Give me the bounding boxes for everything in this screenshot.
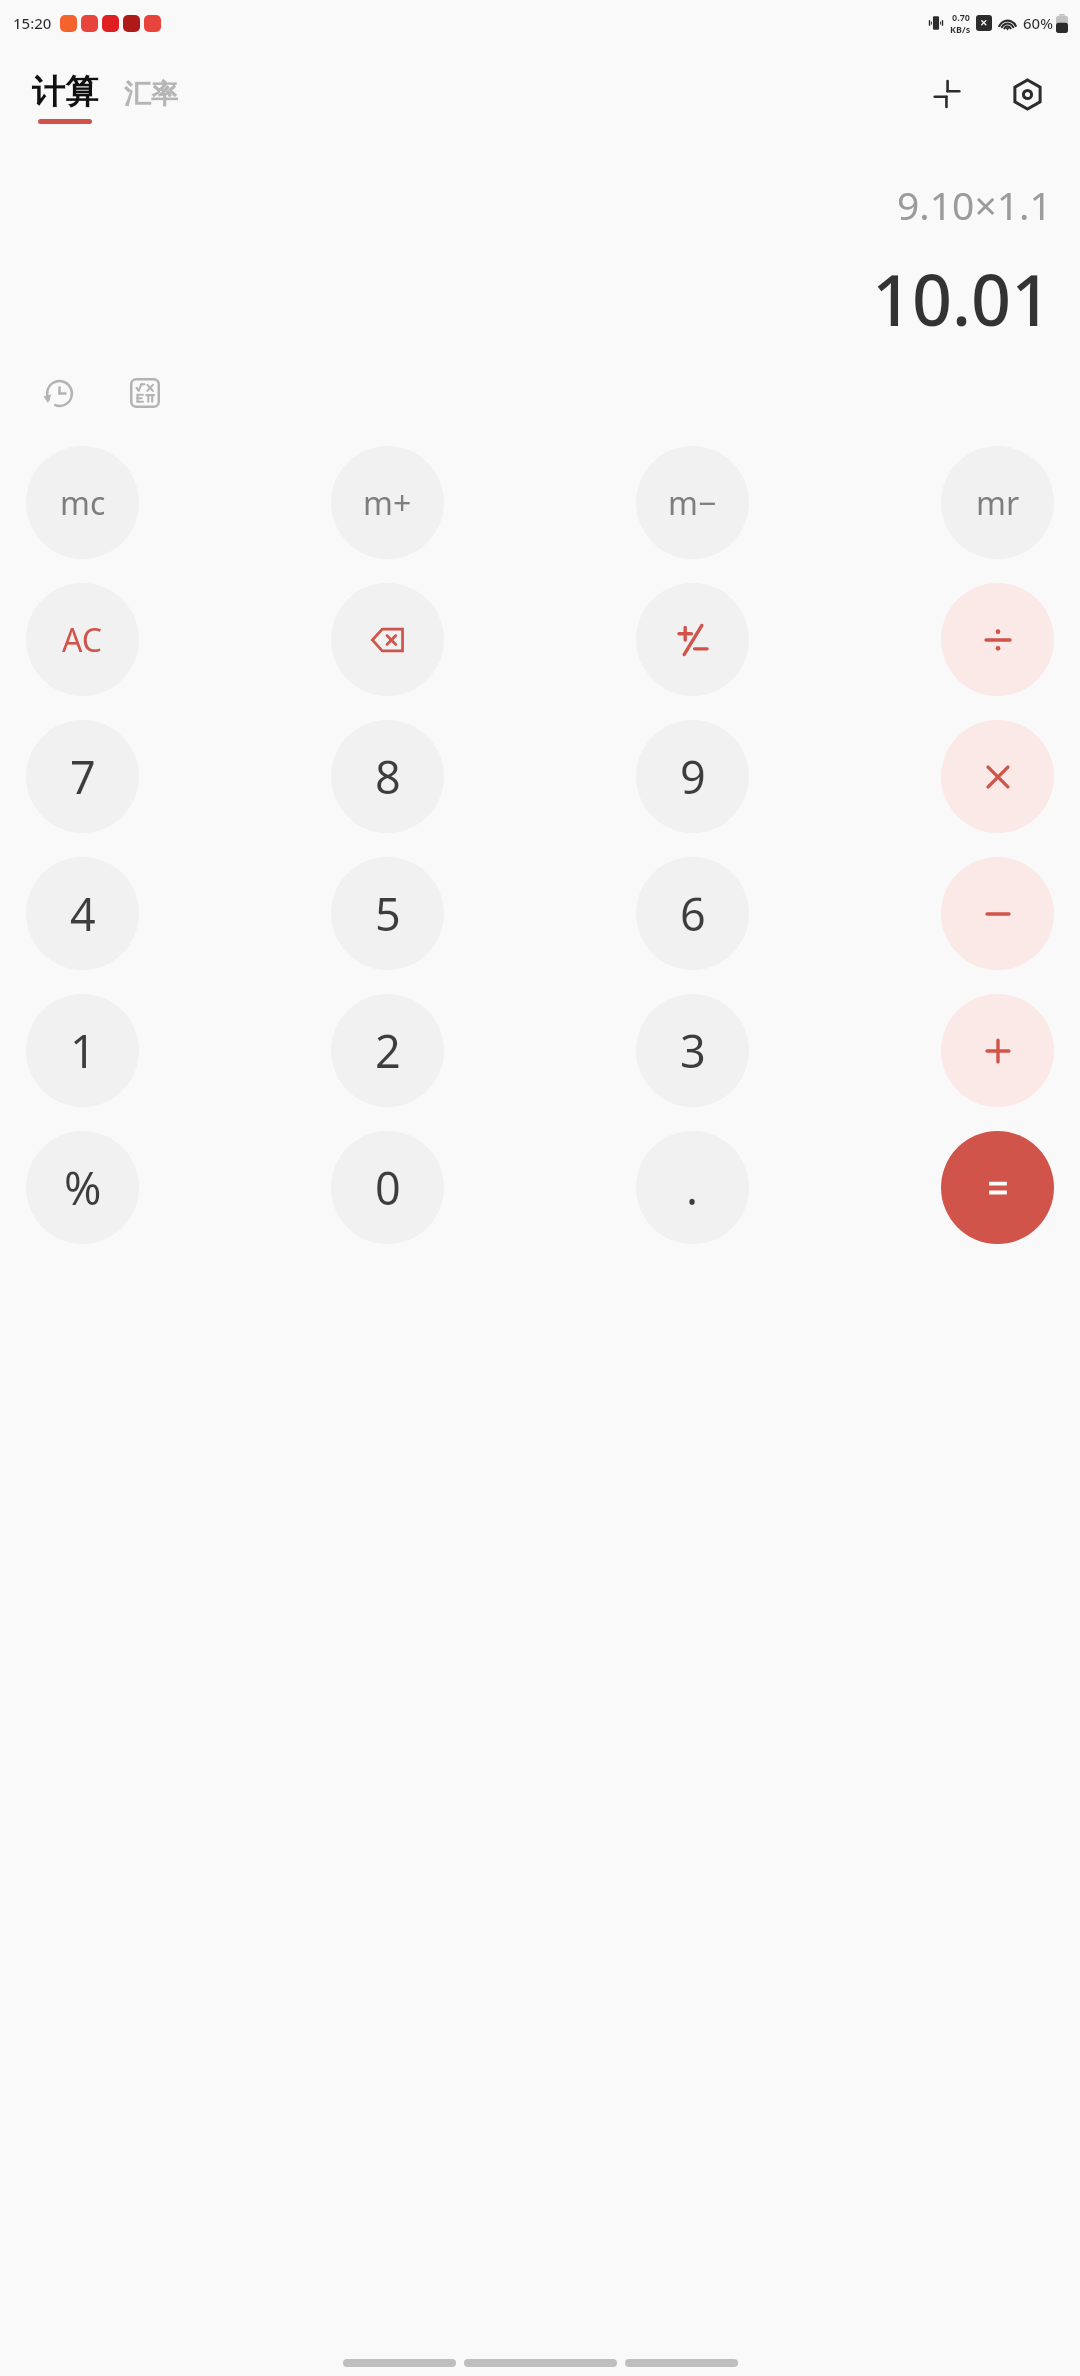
button[interactable]: Settings — [1000, 67, 1054, 121]
staticText: % — [64, 1157, 102, 1218]
button[interactable]: Scientific mode — [118, 366, 172, 420]
button[interactable]: Toggle sign — [636, 583, 749, 696]
button[interactable]: 4 — [26, 857, 139, 970]
staticText: 4 — [70, 883, 96, 944]
button[interactable]: Collapse keypad — [920, 67, 974, 121]
staticText: ✕ — [980, 18, 988, 28]
button[interactable]: 1 — [26, 994, 139, 1107]
staticText: 60% — [1023, 13, 1053, 33]
button[interactable]: History — [32, 366, 86, 420]
staticText: 1 — [70, 1020, 96, 1081]
staticText: mc — [60, 481, 106, 525]
staticText: 6 — [680, 883, 706, 944]
staticText: . — [686, 1157, 699, 1218]
button[interactable]: 计算 — [32, 71, 98, 124]
staticText: 0 — [375, 1157, 401, 1218]
button[interactable]: 9 — [636, 720, 749, 833]
button[interactable]: Add — [941, 994, 1054, 1107]
staticText: m− — [668, 481, 717, 525]
button[interactable]: . — [636, 1131, 749, 1244]
button[interactable]: mr — [941, 446, 1054, 559]
button[interactable]: 2 — [331, 994, 444, 1107]
staticText: 8 — [375, 746, 401, 807]
staticText: m+ — [363, 481, 412, 525]
button[interactable]: Multiply — [941, 720, 1054, 833]
button[interactable]: Back — [343, 2359, 456, 2367]
button[interactable]: m+ — [331, 446, 444, 559]
staticText: 5 — [375, 883, 401, 944]
staticText: 9 — [680, 746, 706, 807]
staticText: 7 — [70, 746, 96, 807]
button[interactable]: Equals — [941, 1131, 1054, 1244]
button[interactable]: m− — [636, 446, 749, 559]
staticText: 15:20 — [13, 13, 52, 33]
staticText: mr — [976, 481, 1020, 525]
button[interactable]: 3 — [636, 994, 749, 1107]
button[interactable]: 汇率 — [124, 77, 178, 124]
button[interactable]: Home — [464, 2359, 617, 2367]
staticText: 汇率 — [124, 77, 178, 111]
staticText: AC — [62, 618, 103, 662]
button[interactable]: 6 — [636, 857, 749, 970]
button[interactable]: mc — [26, 446, 139, 559]
button[interactable]: AC — [26, 583, 139, 696]
staticText: 0.70 — [952, 11, 970, 23]
button[interactable]: 7 — [26, 720, 139, 833]
button[interactable]: 0 — [331, 1131, 444, 1244]
button[interactable]: % — [26, 1131, 139, 1244]
staticText: 3 — [680, 1020, 706, 1081]
staticText: 9.10×1.1 — [897, 178, 1052, 231]
button[interactable]: Backspace — [331, 583, 444, 696]
button[interactable]: Recents — [625, 2359, 738, 2367]
staticText: 2 — [375, 1020, 401, 1081]
staticText: 10.01 — [872, 251, 1052, 346]
button[interactable]: Divide — [941, 583, 1054, 696]
button[interactable]: 5 — [331, 857, 444, 970]
button[interactable]: 8 — [331, 720, 444, 833]
staticText: KB/s — [950, 23, 971, 35]
button[interactable]: Subtract — [941, 857, 1054, 970]
staticText: 计算 — [32, 71, 98, 113]
